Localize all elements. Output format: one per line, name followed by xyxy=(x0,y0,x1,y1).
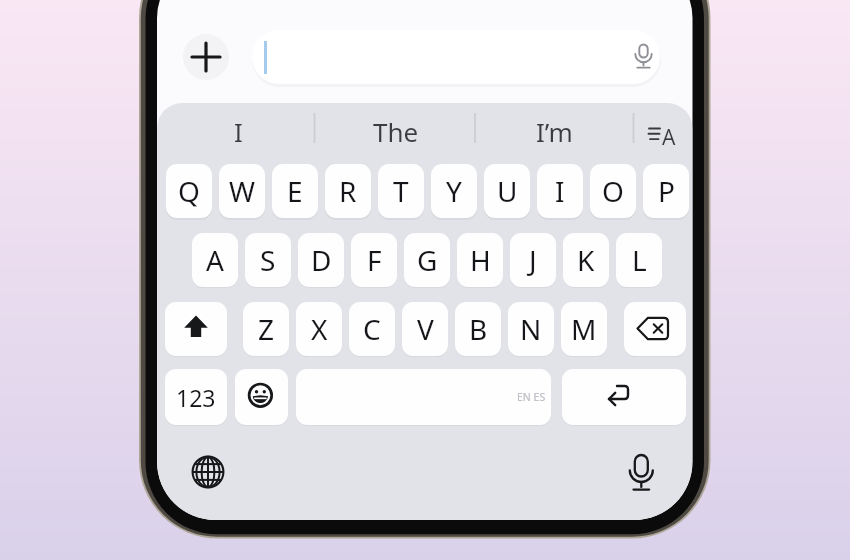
button[interactable]: V xyxy=(402,302,448,356)
button[interactable]: T xyxy=(378,164,424,218)
button[interactable]: Z xyxy=(243,302,289,356)
staticText: R xyxy=(339,172,357,210)
button[interactable]: R xyxy=(325,164,371,218)
button[interactable]: A xyxy=(192,233,238,287)
button[interactable]: S xyxy=(245,233,291,287)
staticText: S xyxy=(260,241,276,279)
button[interactable]: U xyxy=(484,164,530,218)
staticText: T xyxy=(393,172,409,210)
button[interactable]: G xyxy=(404,233,450,287)
button[interactable]: Y xyxy=(431,164,477,218)
button[interactable]: B xyxy=(455,302,501,356)
staticText: A xyxy=(206,241,224,279)
staticText: B xyxy=(469,310,488,348)
button[interactable]: X xyxy=(296,302,342,356)
staticText: L xyxy=(632,241,647,279)
button[interactable]: J xyxy=(510,233,556,287)
button[interactable] xyxy=(619,450,663,494)
staticText: Z xyxy=(258,310,275,348)
button[interactable] xyxy=(235,369,288,425)
button[interactable]: EN ES xyxy=(296,369,551,425)
button[interactable]: K xyxy=(563,233,609,287)
staticText: V xyxy=(417,310,434,348)
staticText: P xyxy=(658,172,675,210)
staticText: Q xyxy=(178,172,200,210)
button[interactable] xyxy=(252,30,660,84)
button[interactable]: I xyxy=(161,108,315,154)
button[interactable]: O xyxy=(590,164,636,218)
button[interactable]: C xyxy=(349,302,395,356)
button[interactable]: H xyxy=(457,233,503,287)
staticText: F xyxy=(367,241,382,279)
staticText: C xyxy=(363,310,381,348)
staticText: D xyxy=(311,241,332,279)
button[interactable]: W xyxy=(219,164,265,218)
staticText: N xyxy=(520,310,542,348)
button[interactable] xyxy=(183,34,229,80)
staticText: K xyxy=(577,241,595,279)
staticText: 123 xyxy=(176,382,216,413)
button[interactable]: N xyxy=(508,302,554,356)
button[interactable] xyxy=(165,302,227,356)
button[interactable]: D xyxy=(298,233,344,287)
staticText: A xyxy=(662,123,676,145)
button[interactable]: F xyxy=(351,233,397,287)
button[interactable]: L xyxy=(616,233,662,287)
staticText: I’m xyxy=(536,114,573,149)
button[interactable]: 123 xyxy=(165,369,227,425)
button[interactable]: E xyxy=(272,164,318,218)
staticText: Y xyxy=(446,172,462,210)
button[interactable]: I’m xyxy=(475,108,634,154)
button[interactable]: P xyxy=(643,164,689,218)
button[interactable] xyxy=(624,302,686,356)
staticText: EN ES xyxy=(517,390,546,404)
staticText: W xyxy=(229,172,256,210)
staticText: J xyxy=(529,241,537,279)
button[interactable]: Q xyxy=(166,164,212,218)
staticText: H xyxy=(470,241,491,279)
staticText: The xyxy=(373,114,419,149)
button[interactable] xyxy=(562,369,686,425)
staticText: X xyxy=(311,310,328,348)
staticText: M xyxy=(571,310,597,348)
button[interactable]: I xyxy=(537,164,583,218)
staticText: I xyxy=(555,172,565,210)
staticText: E xyxy=(287,172,303,210)
staticText: O xyxy=(602,172,624,210)
button[interactable] xyxy=(634,108,690,154)
button[interactable]: The xyxy=(315,108,476,154)
staticText: I xyxy=(234,114,243,149)
staticText: G xyxy=(417,241,438,279)
button[interactable]: M xyxy=(561,302,607,356)
staticText: U xyxy=(497,172,518,210)
button[interactable] xyxy=(186,450,230,494)
